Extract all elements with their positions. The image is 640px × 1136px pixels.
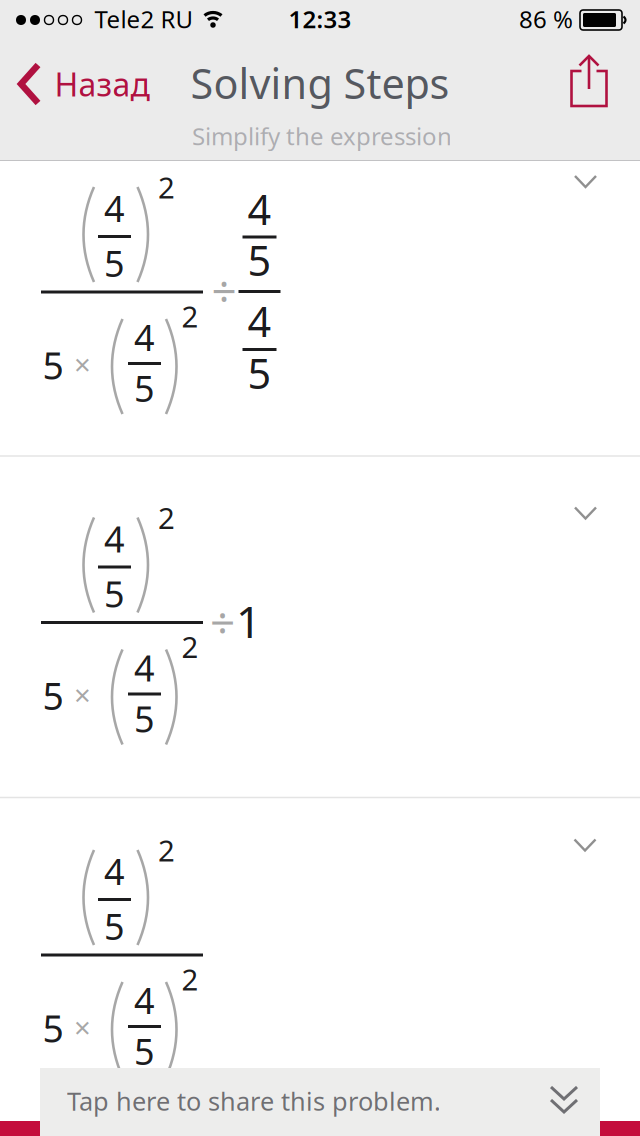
staticText: 4: [247, 294, 271, 348]
staticText: 2: [181, 959, 198, 998]
staticText: 5: [247, 346, 271, 400]
staticText: 5: [134, 1027, 155, 1075]
staticText: 1: [236, 592, 261, 650]
staticText: 4: [134, 313, 155, 361]
staticText: 5: [42, 1003, 63, 1053]
staticText: ÷: [210, 592, 235, 651]
staticText: 12:33: [288, 3, 351, 35]
staticText: 4: [104, 847, 125, 895]
staticText: 2: [158, 498, 175, 537]
staticText: 5: [104, 239, 125, 287]
staticText: ×: [74, 675, 91, 714]
staticText: 5: [104, 570, 125, 617]
staticText: 2: [158, 167, 175, 206]
staticText: 5: [42, 671, 63, 720]
staticText: 4: [247, 182, 271, 236]
staticText: 2: [158, 830, 175, 869]
staticText: 2: [181, 296, 198, 335]
staticText: Назад: [54, 63, 149, 105]
staticText: 5: [247, 233, 271, 287]
button[interactable]: Share: [556, 46, 620, 118]
button[interactable]: Назад: [0, 49, 164, 119]
button[interactable]: Share this problem: [40, 1068, 600, 1136]
staticText: 4: [104, 515, 125, 562]
staticText: 86 %: [519, 3, 573, 35]
button[interactable]: Expand step 1: [555, 162, 615, 206]
staticText: 5: [104, 902, 125, 950]
staticText: 2: [181, 627, 198, 666]
staticText: ×: [74, 1007, 91, 1046]
staticText: 4: [134, 644, 155, 691]
staticText: ÷: [211, 261, 236, 319]
staticText: Simplify the expression: [192, 120, 452, 152]
staticText: Solving Steps: [190, 56, 449, 110]
button[interactable]: Expand step 3: [555, 825, 615, 869]
staticText: Tap here to share this problem.: [67, 1084, 441, 1118]
staticText: 5: [134, 364, 155, 412]
button[interactable]: Expand step 2: [555, 493, 615, 537]
staticText: 5: [42, 340, 63, 390]
staticText: Tele2 RU: [94, 3, 193, 35]
staticText: 4: [134, 976, 155, 1024]
staticText: 5: [134, 695, 155, 742]
staticText: ×: [74, 344, 91, 383]
staticText: 4: [104, 184, 125, 232]
